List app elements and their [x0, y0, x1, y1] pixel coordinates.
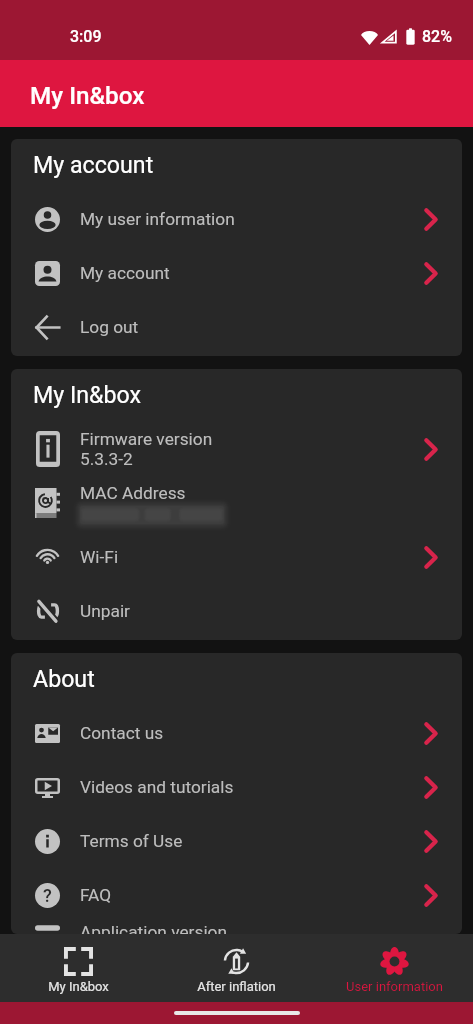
button[interactable]: Terms of Use	[11, 814, 462, 868]
staticText: 82%	[422, 27, 452, 46]
staticText: About	[33, 665, 95, 692]
button[interactable]: ?	[11, 868, 462, 922]
button[interactable]: Firmware version	[11, 422, 462, 476]
staticText: Application version	[80, 922, 228, 934]
staticText: Wi-Fi	[80, 547, 119, 567]
staticText: Terms of Use	[80, 831, 183, 851]
button[interactable]: User information	[315, 935, 473, 1001]
staticText: Firmware version	[80, 429, 213, 449]
staticText: My account	[33, 151, 154, 178]
staticText: Contact us	[80, 723, 164, 743]
button[interactable]: My In&box	[0, 935, 157, 1001]
staticText: My In&box	[33, 381, 142, 408]
staticText: My user information	[80, 209, 235, 229]
staticText: Videos and tutorials	[80, 777, 234, 797]
button[interactable]: My account	[11, 246, 462, 300]
button[interactable]: After inflation	[157, 935, 315, 1001]
button[interactable]: Application version	[11, 922, 462, 934]
staticText: Unpair	[80, 601, 130, 621]
staticText: My In&box	[48, 979, 109, 994]
button[interactable]: Unpair	[11, 584, 462, 638]
staticText: My In&box	[30, 81, 145, 109]
button[interactable]: Log out	[11, 300, 462, 354]
button[interactable]: Contact us	[11, 706, 462, 760]
staticText: FAQ	[80, 885, 112, 905]
button[interactable]: My user information	[11, 192, 462, 246]
staticText: ?	[43, 885, 52, 906]
button[interactable]: Wi-Fi	[11, 530, 462, 584]
staticText: 5.3.3-2	[80, 449, 133, 469]
button[interactable]: MAC Address	[11, 476, 462, 530]
staticText: My account	[80, 263, 170, 283]
staticText: After inflation	[197, 979, 276, 994]
button[interactable]: Videos and tutorials	[11, 760, 462, 814]
staticText: User information	[346, 979, 443, 994]
staticText: MAC Address	[80, 483, 186, 503]
staticText: Log out	[80, 317, 139, 337]
staticText: 3:09	[70, 27, 102, 46]
